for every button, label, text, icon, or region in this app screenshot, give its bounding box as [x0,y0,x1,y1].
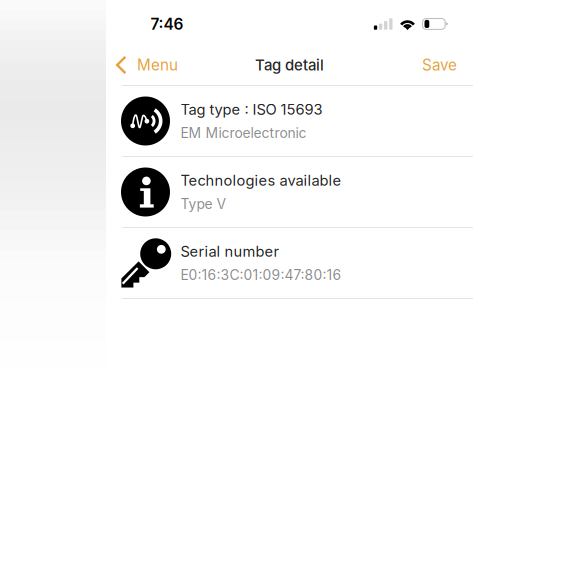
staticText: Tag detail [255,56,324,74]
staticText: Menu [137,56,178,74]
button[interactable]: Save [408,45,473,85]
staticText: E0:16:3C:01:09:47:80:16 [180,267,341,283]
staticText: 7:46 [150,15,183,33]
staticText: Tag type : ISO 15693 [180,100,322,118]
button[interactable]: Serial number [106,228,473,298]
button[interactable]: Menu [106,45,186,85]
staticText: EM Microelectronic [180,125,306,141]
button[interactable]: Technologies available [106,157,473,227]
staticText: Serial number [180,242,279,260]
staticText: Type V [180,196,226,212]
button[interactable]: Tag type : ISO 15693 [106,86,473,156]
staticText: Technologies available [180,171,341,189]
staticText: Save [422,56,457,74]
